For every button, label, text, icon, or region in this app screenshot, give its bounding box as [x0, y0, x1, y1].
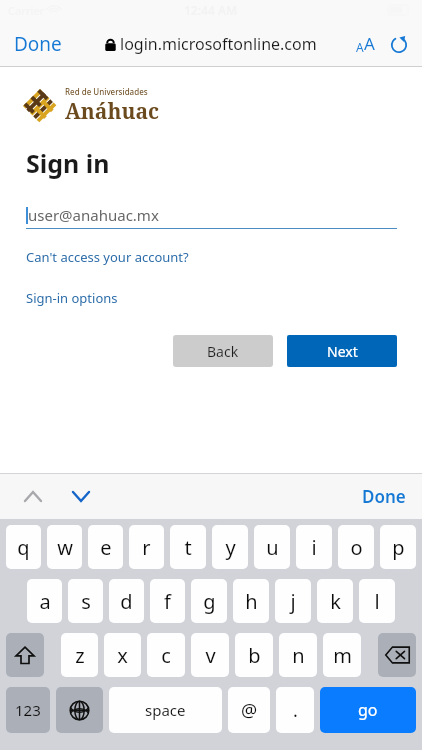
- staticText: Done: [362, 485, 406, 508]
- button[interactable]: u: [254, 525, 290, 569]
- button[interactable]: login.microsoftonline.com: [99, 27, 323, 61]
- button[interactable]: z: [61, 633, 98, 677]
- button[interactable]: w: [47, 525, 82, 569]
- staticText: .: [293, 698, 298, 723]
- button[interactable]: q: [6, 525, 41, 569]
- button[interactable]: d: [109, 579, 144, 623]
- button[interactable]: g: [191, 579, 227, 623]
- button[interactable]: Done: [346, 477, 422, 516]
- staticText: e: [100, 534, 112, 561]
- button[interactable]: Shift: [6, 633, 44, 677]
- staticText: Sign-in options: [26, 289, 118, 307]
- staticText: Anáhuac: [65, 97, 160, 126]
- staticText: r: [142, 534, 151, 561]
- button[interactable]: x: [104, 633, 141, 677]
- staticText: u: [266, 534, 279, 561]
- button[interactable]: .: [276, 687, 314, 733]
- button[interactable]: b: [235, 633, 273, 677]
- staticText: g: [203, 588, 216, 615]
- button[interactable]: f: [150, 579, 185, 623]
- button[interactable]: o: [338, 525, 374, 569]
- button[interactable]: Next: [287, 335, 397, 367]
- button[interactable]: Next field: [64, 483, 98, 510]
- staticText: Sign in: [26, 146, 110, 180]
- button[interactable]: Backspace: [378, 633, 416, 677]
- staticText: l: [374, 588, 380, 615]
- staticText: A: [364, 32, 375, 55]
- staticText: z: [75, 642, 85, 669]
- button[interactable]: @: [228, 687, 270, 733]
- button[interactable]: k: [317, 579, 353, 623]
- button[interactable]: go: [320, 687, 416, 733]
- button[interactable]: Previous field: [16, 483, 50, 510]
- staticText: space: [145, 700, 186, 720]
- staticText: f: [164, 588, 171, 615]
- button[interactable]: v: [191, 633, 229, 677]
- button[interactable]: 123: [6, 687, 50, 733]
- button[interactable]: e: [88, 525, 123, 569]
- staticText: x: [117, 642, 128, 669]
- staticText: Next: [327, 342, 358, 361]
- staticText: q: [17, 534, 30, 561]
- staticText: b: [248, 642, 261, 669]
- staticText: c: [161, 642, 171, 669]
- staticText: n: [292, 642, 305, 669]
- button[interactable]: Text size: [349, 22, 382, 65]
- staticText: login.microsoftonline.com: [120, 33, 317, 55]
- staticText: h: [245, 588, 258, 615]
- button[interactable]: m: [323, 633, 361, 677]
- staticText: w: [57, 534, 73, 561]
- staticText: go: [358, 699, 378, 721]
- staticText: a: [39, 588, 51, 615]
- button[interactable]: i: [296, 525, 332, 569]
- button[interactable]: t: [170, 525, 206, 569]
- staticText: @: [241, 698, 258, 723]
- button[interactable]: Done: [0, 23, 76, 65]
- staticText: y: [225, 534, 236, 561]
- button[interactable]: s: [68, 579, 103, 623]
- staticText: o: [350, 534, 363, 561]
- staticText: user@anahuac.mx: [28, 205, 159, 225]
- button[interactable]: j: [275, 579, 311, 623]
- staticText: v: [205, 642, 216, 669]
- button[interactable]: a: [27, 579, 62, 623]
- button[interactable]: Change keyboard: [56, 687, 103, 733]
- button[interactable]: r: [129, 525, 164, 569]
- button[interactable]: Back: [173, 335, 273, 367]
- staticText: i: [311, 534, 317, 561]
- button[interactable]: Can't access your account?: [0, 245, 199, 269]
- staticText: s: [81, 588, 91, 615]
- staticText: Can't access your account?: [26, 248, 189, 266]
- staticText: t: [184, 534, 192, 561]
- button[interactable]: h: [233, 579, 269, 623]
- staticText: Red de Universidades: [65, 86, 148, 97]
- button[interactable]: l: [359, 579, 395, 623]
- staticText: A: [356, 39, 364, 55]
- staticText: j: [290, 588, 296, 615]
- staticText: p: [392, 534, 405, 561]
- button[interactable]: Reload: [382, 25, 416, 63]
- staticText: d: [120, 588, 133, 615]
- button[interactable]: Sign-in options: [0, 286, 128, 310]
- button[interactable]: n: [279, 633, 317, 677]
- staticText: Done: [14, 31, 62, 57]
- button[interactable]: c: [147, 633, 185, 677]
- staticText: 123: [15, 700, 41, 720]
- button[interactable]: space: [109, 687, 222, 733]
- staticText: k: [330, 588, 341, 615]
- button[interactable]: p: [380, 525, 416, 569]
- button[interactable]: y: [212, 525, 248, 569]
- staticText: Back: [207, 342, 239, 361]
- staticText: m: [333, 642, 352, 669]
- button[interactable]: user@anahuac.mx: [26, 200, 397, 229]
